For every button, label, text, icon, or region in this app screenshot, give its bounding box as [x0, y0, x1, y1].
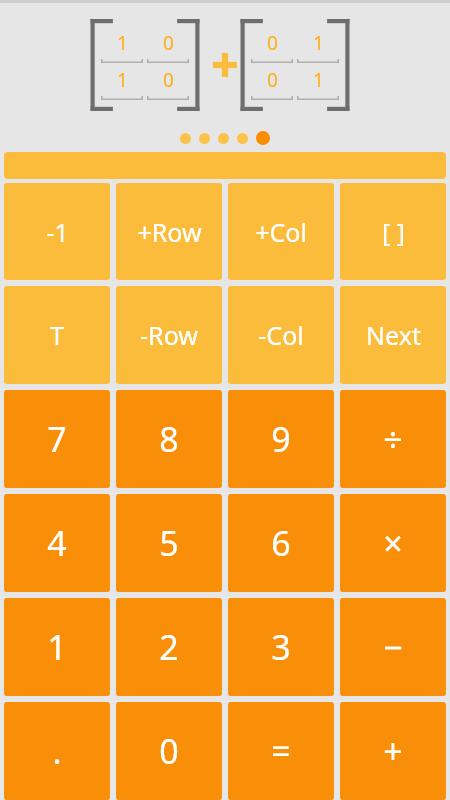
button[interactable]: -1: [4, 183, 110, 280]
staticText: -Col: [258, 318, 304, 352]
staticText: 0: [267, 67, 278, 93]
staticText: 4: [47, 520, 67, 566]
staticText: 3: [271, 624, 291, 670]
staticText: T: [50, 318, 64, 352]
button[interactable]: [ ]: [340, 183, 446, 280]
staticText: ×: [383, 520, 403, 566]
button[interactable]: 2: [116, 598, 222, 696]
button[interactable]: 1: [4, 598, 110, 696]
staticText: 7: [47, 416, 67, 462]
button[interactable]: .: [4, 702, 110, 800]
button[interactable]: 0: [239, 19, 351, 111]
staticText: 1: [117, 67, 128, 93]
staticText: 0: [267, 30, 278, 56]
staticText: 1: [313, 30, 324, 56]
staticText: [ ]: [382, 215, 405, 249]
button[interactable]: 6: [228, 494, 334, 592]
staticText: 0: [163, 67, 174, 93]
staticText: 5: [159, 520, 179, 566]
button[interactable]: Input field: [4, 152, 446, 179]
button[interactable]: -Row: [116, 286, 222, 384]
staticText: -Row: [140, 318, 198, 352]
staticText: ÷: [383, 416, 403, 462]
staticText: Next: [366, 318, 421, 352]
button[interactable]: 0: [116, 702, 222, 800]
button[interactable]: +Row: [116, 183, 222, 280]
button[interactable]: 7: [4, 390, 110, 488]
button[interactable]: T: [4, 286, 110, 384]
staticText: 6: [271, 520, 291, 566]
staticText: 9: [271, 416, 291, 462]
button[interactable]: 3: [228, 598, 334, 696]
staticText: .: [52, 728, 62, 774]
button[interactable]: ×: [340, 494, 446, 592]
button[interactable]: 5: [116, 494, 222, 592]
button[interactable]: -Col: [228, 286, 334, 384]
staticText: 1: [313, 67, 324, 93]
staticText: =: [271, 728, 291, 774]
staticText: -1: [46, 215, 69, 249]
button[interactable]: 4: [4, 494, 110, 592]
button[interactable]: =: [228, 702, 334, 800]
button[interactable]: +: [340, 702, 446, 800]
button[interactable]: −: [340, 598, 446, 696]
staticText: 8: [159, 416, 179, 462]
button[interactable]: 1: [89, 19, 201, 111]
button[interactable]: Next: [340, 286, 446, 384]
staticText: 1: [117, 30, 128, 56]
staticText: 0: [163, 30, 174, 56]
button[interactable]: +Col: [228, 183, 334, 280]
button[interactable]: 8: [116, 390, 222, 488]
staticText: 2: [159, 624, 179, 670]
button[interactable]: ÷: [340, 390, 446, 488]
staticText: −: [383, 624, 403, 670]
staticText: +Col: [255, 215, 307, 249]
staticText: +: [383, 728, 403, 774]
staticText: 1: [47, 624, 67, 670]
staticText: 0: [159, 728, 179, 774]
staticText: +Row: [137, 215, 202, 249]
button[interactable]: 9: [228, 390, 334, 488]
